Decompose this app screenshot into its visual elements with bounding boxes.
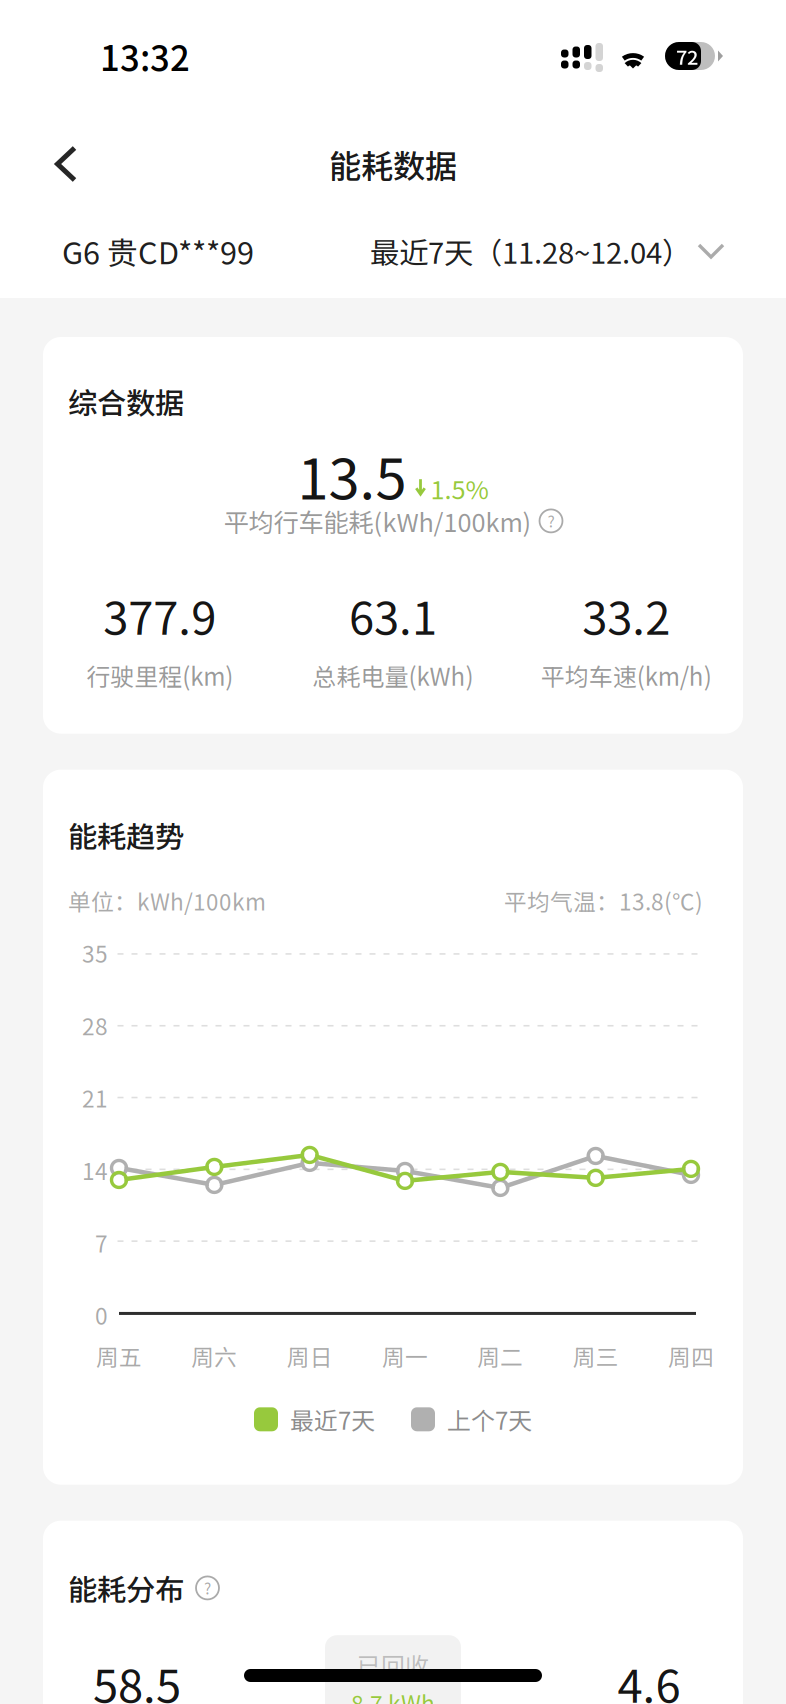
staticText: 35 bbox=[82, 936, 108, 969]
staticText: 周六 bbox=[191, 1339, 237, 1372]
staticText: 1.5% bbox=[430, 470, 488, 507]
staticText: ? bbox=[204, 1577, 211, 1599]
staticText: 已回收 bbox=[357, 1647, 429, 1682]
staticText: 综合数据 bbox=[68, 380, 184, 422]
staticText: 周五 bbox=[96, 1339, 142, 1372]
staticText: 21 bbox=[82, 1081, 108, 1114]
staticText: 58.5 bbox=[93, 1650, 181, 1704]
staticText: 总耗电量(kWh) bbox=[312, 658, 473, 693]
staticText: 最近7天（11.28~12.04） bbox=[370, 230, 691, 272]
button[interactable]: Back bbox=[28, 126, 104, 202]
staticText: 7 bbox=[95, 1226, 108, 1259]
staticText: 72 bbox=[676, 41, 698, 70]
staticText: 周日 bbox=[287, 1339, 333, 1372]
staticText: 周二 bbox=[477, 1339, 523, 1372]
staticText: 能耗分布 bbox=[68, 1567, 184, 1609]
button[interactable]: 最近7天（11.28~12.04） bbox=[370, 220, 725, 282]
staticText: 周三 bbox=[573, 1339, 619, 1372]
staticText: 最近7天 bbox=[290, 1402, 375, 1437]
staticText: 周一 bbox=[382, 1339, 428, 1372]
staticText: 周四 bbox=[668, 1339, 714, 1372]
button[interactable]: G6 贵CD***99 bbox=[62, 220, 282, 282]
staticText: G6 贵CD***99 bbox=[62, 229, 254, 273]
staticText: 0 bbox=[95, 1298, 108, 1331]
staticText: 377.9 bbox=[103, 582, 216, 648]
staticText: 行驶里程(km) bbox=[86, 658, 233, 693]
staticText: 13:32 bbox=[100, 31, 190, 81]
staticText: 能耗数据 bbox=[329, 141, 457, 187]
staticText: 13.5 bbox=[297, 434, 406, 516]
staticText: 63.1 bbox=[349, 582, 437, 648]
staticText: 平均车速(km/h) bbox=[541, 658, 712, 693]
staticText: 4.6 bbox=[617, 1650, 680, 1704]
staticText: 28 bbox=[82, 1009, 108, 1042]
staticText: ? bbox=[547, 510, 554, 532]
staticText: 平均气温：13.8(℃) bbox=[504, 884, 703, 917]
staticText: 上个7天 bbox=[447, 1402, 532, 1437]
staticText: 能耗趋势 bbox=[68, 814, 184, 856]
staticText: 8.7 kWh bbox=[351, 1686, 435, 1704]
staticText: 单位：kWh/100km bbox=[68, 884, 266, 917]
staticText: 平均行车能耗(kWh/100km) bbox=[223, 503, 531, 539]
staticText: 33.2 bbox=[582, 582, 670, 648]
staticText: 14 bbox=[82, 1154, 108, 1186]
